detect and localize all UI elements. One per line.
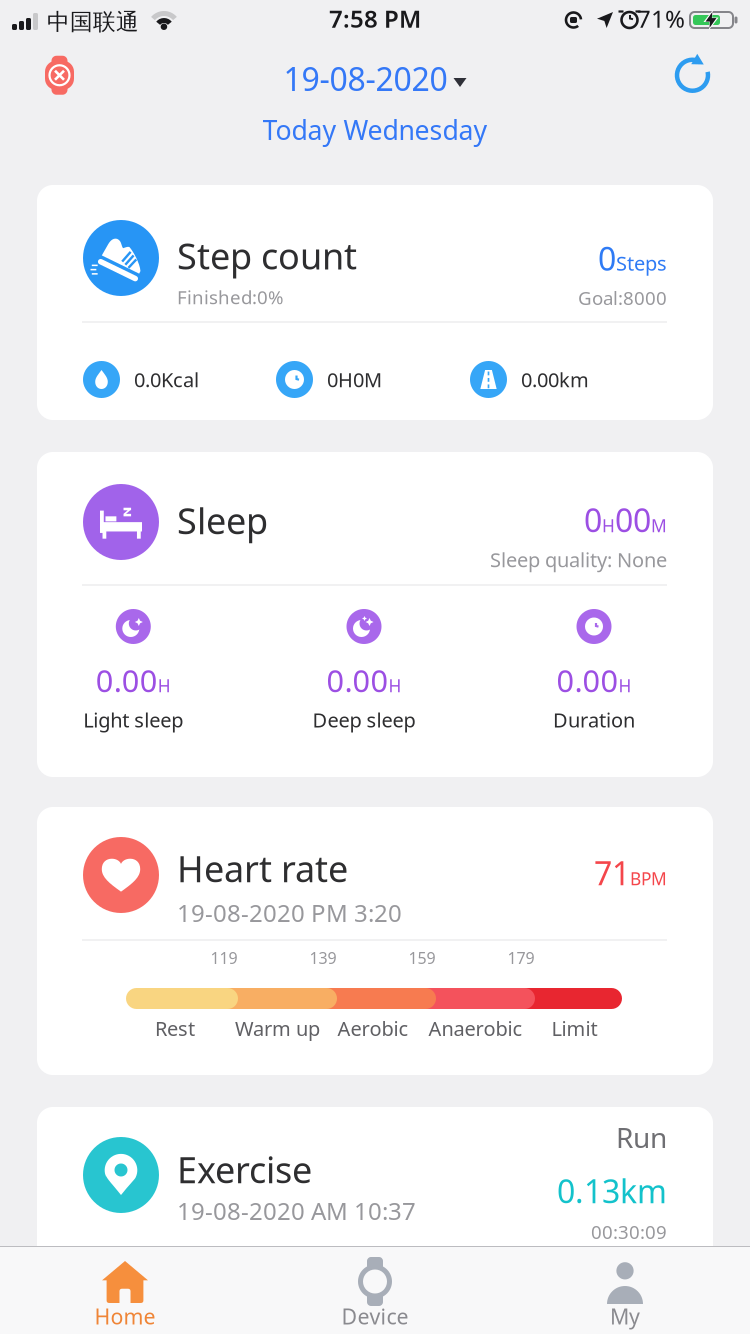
- staticText: Limit: [551, 1015, 597, 1042]
- staticText: 0: [598, 237, 616, 280]
- staticText: Home: [94, 1302, 155, 1330]
- staticText: 7:58 PM: [329, 2, 421, 34]
- staticText: 19-08-2020 PM 3:20: [177, 897, 402, 929]
- button[interactable]: Today Wednesday: [0, 112, 750, 147]
- staticText: Sleep quality: None: [490, 546, 667, 573]
- staticText: 71%: [637, 2, 685, 34]
- button[interactable]: Home: [0, 1246, 250, 1334]
- staticText: Device: [341, 1302, 408, 1330]
- button[interactable]: Step count: [37, 185, 713, 420]
- staticText: Deep sleep: [312, 706, 415, 733]
- button[interactable]: Exercise: [37, 1107, 713, 1334]
- staticText: Exercise: [177, 1145, 312, 1193]
- staticText: Goal:8000: [578, 285, 667, 310]
- staticText: Sleep: [177, 496, 268, 544]
- staticText: My: [610, 1302, 640, 1330]
- staticText: H: [158, 674, 171, 697]
- staticText: 0.0Kcal: [134, 366, 199, 393]
- staticText: Heart rate: [177, 844, 348, 892]
- staticText: 19-08-2020: [283, 57, 447, 100]
- staticText: Rest: [155, 1015, 195, 1042]
- staticText: 0.13km: [557, 1169, 667, 1212]
- staticText: 0.00km: [521, 366, 589, 393]
- staticText: Light sleep: [83, 706, 183, 733]
- staticText: Anaerobic: [428, 1015, 522, 1042]
- staticText: 19-08-2020 AM 10:37: [177, 1195, 416, 1227]
- staticText: Finished:0%: [177, 285, 284, 309]
- button[interactable]: Heart rate: [37, 807, 713, 1075]
- staticText: 中国联通: [47, 8, 139, 36]
- button[interactable]: Sleep: [37, 452, 713, 777]
- staticText: H: [618, 674, 631, 697]
- button[interactable]: Refresh: [675, 57, 711, 93]
- staticText: 139: [309, 947, 336, 968]
- staticText: M: [651, 514, 667, 537]
- staticText: Run: [616, 1118, 667, 1156]
- staticText: Today Wednesday: [262, 112, 487, 147]
- staticText: 0: [584, 499, 602, 541]
- staticText: Warm up: [235, 1015, 320, 1042]
- staticText: Step count: [177, 232, 357, 279]
- staticText: 0H0M: [327, 366, 382, 393]
- staticText: Aerobic: [337, 1015, 408, 1042]
- staticText: 00: [615, 499, 651, 541]
- staticText: 159: [408, 947, 435, 968]
- staticText: 0.00: [556, 660, 618, 701]
- staticText: 179: [507, 947, 534, 968]
- staticText: BPM: [630, 867, 667, 890]
- staticText: 0.00: [96, 660, 158, 701]
- button[interactable]: Device: [250, 1246, 500, 1334]
- staticText: Steps: [616, 250, 667, 276]
- staticText: H: [388, 674, 401, 697]
- button[interactable]: My: [500, 1246, 750, 1334]
- staticText: 0.00: [326, 660, 388, 701]
- staticText: 00:30:09: [591, 1219, 667, 1244]
- staticText: Duration: [553, 706, 635, 733]
- staticText: 119: [210, 947, 237, 968]
- button[interactable]: 19-08-2020: [283, 57, 466, 100]
- staticText: 71: [594, 851, 630, 894]
- button[interactable]: Device connection: [45, 56, 74, 95]
- staticText: H: [602, 514, 615, 537]
